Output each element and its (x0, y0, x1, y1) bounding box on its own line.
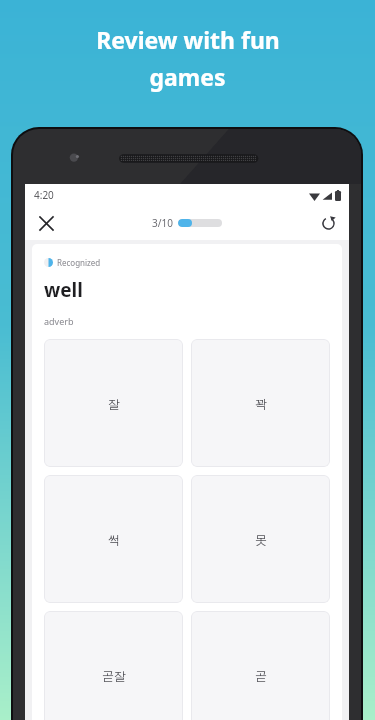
button[interactable]: Close (29, 206, 63, 240)
button[interactable]: 못 (191, 475, 330, 603)
staticText: 4:20 (34, 188, 54, 202)
staticText: adverb (44, 315, 74, 327)
staticText: 3/10 (152, 216, 173, 230)
button[interactable]: 곧잘 (44, 611, 183, 720)
staticText: 꽉 (255, 396, 267, 411)
staticText: 곧 (255, 668, 267, 683)
staticText: 잘 (108, 396, 120, 411)
button[interactable]: 곧 (191, 611, 330, 720)
staticText: Review with fun (96, 24, 280, 55)
staticText: games (149, 61, 226, 92)
staticText: well (44, 277, 83, 303)
button[interactable]: Restart (311, 206, 345, 240)
button[interactable]: 꽉 (191, 339, 330, 467)
staticText: Recognized (57, 257, 101, 268)
staticText: 곧잘 (102, 668, 126, 683)
staticText: 못 (255, 532, 267, 547)
button[interactable]: 썩 (44, 475, 183, 603)
button[interactable]: 잘 (44, 339, 183, 467)
staticText: 썩 (108, 532, 120, 547)
